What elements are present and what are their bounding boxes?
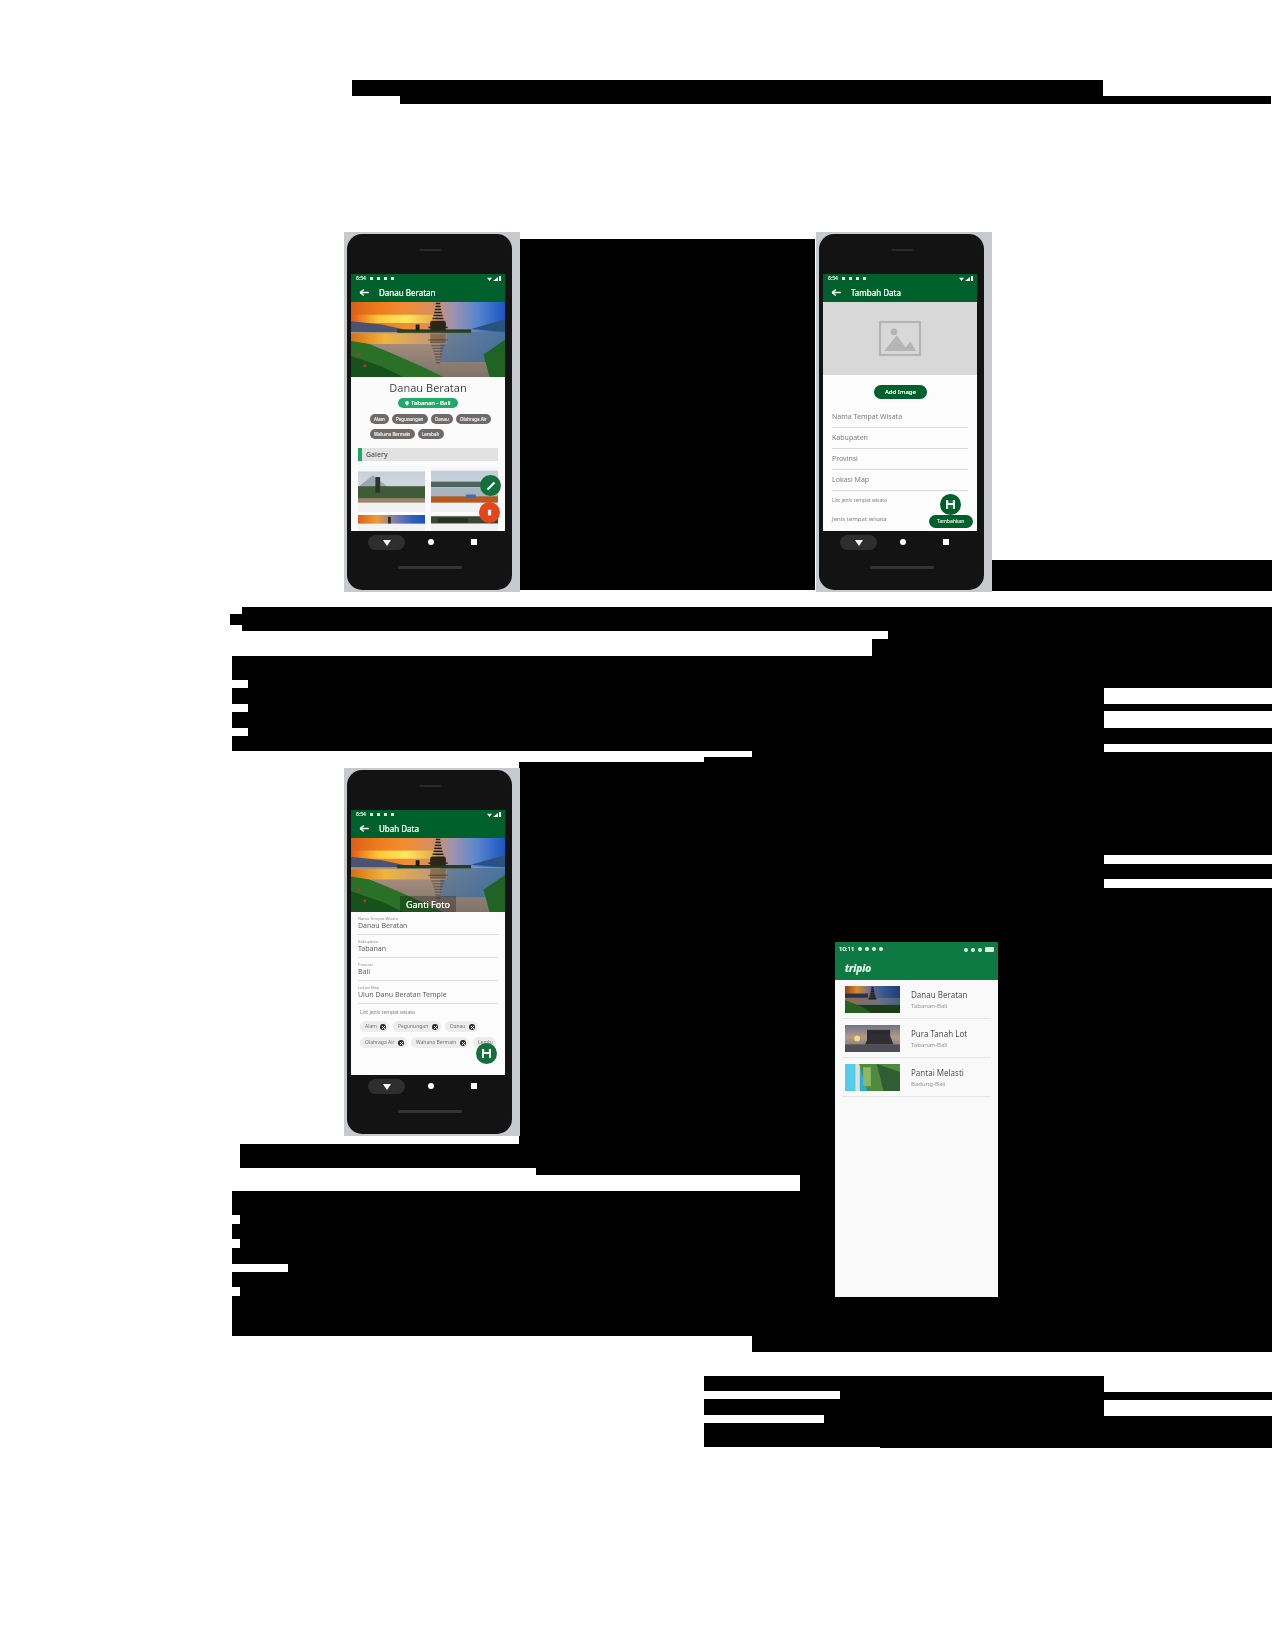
staticText: Alam: [374, 416, 385, 422]
staticText: Ganti Foto: [406, 898, 450, 910]
staticText: Jenis tempat wisata: [832, 515, 887, 523]
staticText: Tabanan: [358, 944, 387, 954]
staticText: Pegunungan: [396, 416, 424, 422]
staticText: Olahraga Air: [365, 1039, 395, 1046]
button[interactable]: Pura Tanah Lot: [835, 1019, 998, 1057]
button[interactable]: Home: [428, 539, 434, 545]
button[interactable]: Wahana Bermain: [416, 1039, 466, 1046]
button[interactable]: Back: [359, 823, 370, 834]
button[interactable]: [358, 466, 425, 512]
button[interactable]: Pegunungan: [398, 1023, 438, 1030]
button[interactable]: Tabanan - Bali: [405, 399, 451, 407]
button[interactable]: Add Image: [885, 388, 916, 396]
staticText: tripio: [845, 961, 872, 975]
button[interactable]: Save: [476, 1043, 497, 1064]
staticText: Danau Beratan: [351, 380, 505, 395]
button[interactable]: Home: [900, 539, 906, 545]
staticText: Lembah: [478, 1039, 493, 1046]
button[interactable]: Save: [940, 494, 961, 515]
button[interactable]: Tambahkan: [937, 518, 965, 525]
button[interactable]: Back: [368, 1079, 405, 1094]
staticText: Pegunungan: [398, 1023, 429, 1030]
staticText: Kabupaten: [358, 939, 379, 944]
staticText: Danau: [435, 416, 449, 422]
staticText: Pura Tanah Lot: [911, 1028, 968, 1039]
staticText: List jenis tempat wisata: [832, 497, 887, 504]
button[interactable]: Back: [831, 287, 842, 298]
button[interactable]: Danau Beratan: [835, 980, 998, 1018]
staticText: 10:11: [839, 945, 855, 953]
button[interactable]: Alam: [365, 1023, 386, 1030]
staticText: Alam: [365, 1023, 377, 1030]
staticText: Danau: [450, 1023, 466, 1030]
button[interactable]: Olahraga Air: [365, 1039, 404, 1046]
staticText: Lokasi Map: [832, 475, 870, 485]
button[interactable]: Alam: [374, 416, 385, 422]
staticText: Olahraga Air: [460, 416, 487, 422]
staticText: Danau Beratan: [911, 989, 968, 1000]
staticText: Wahana Bermain: [416, 1039, 457, 1046]
staticText: Nama Tempat Wisata: [358, 916, 399, 921]
button[interactable]: Back: [840, 535, 877, 550]
staticText: Danau Beratan: [379, 287, 436, 298]
staticText: Tabanan - Bali: [411, 399, 451, 407]
staticText: Lembah: [422, 431, 440, 437]
staticText: Bali: [358, 967, 371, 977]
staticText: Lokasi Map: [358, 985, 380, 990]
button[interactable]: Back: [823, 282, 977, 302]
button[interactable]: [358, 515, 425, 531]
button[interactable]: [431, 515, 498, 531]
button[interactable]: Back: [359, 287, 370, 298]
staticText: Ubah Data: [379, 823, 419, 834]
staticText: Galery: [366, 450, 388, 460]
button[interactable]: Danau: [435, 416, 449, 422]
staticText: 6:54: [828, 275, 838, 282]
button[interactable]: Lembah: [478, 1039, 493, 1046]
button[interactable]: Delete: [479, 502, 500, 523]
staticText: Tambah Data: [851, 287, 901, 298]
button[interactable]: [431, 466, 498, 512]
staticText: Danau Beratan: [358, 921, 408, 931]
button[interactable]: Pantai Melasti: [835, 1058, 998, 1096]
button[interactable]: Danau: [450, 1023, 475, 1030]
staticText: Ulun Danu Beratan Temple: [358, 990, 447, 1000]
staticText: Badung-Bali: [911, 1080, 946, 1088]
staticText: Tambahkan: [937, 518, 965, 525]
button[interactable]: Back: [351, 282, 505, 302]
staticText: Kabupaten: [832, 433, 868, 443]
staticText: 6:54: [356, 275, 366, 282]
button[interactable]: Home: [428, 1083, 434, 1089]
staticText: Nama Tempat Wisata: [832, 412, 903, 422]
button[interactable]: Back: [368, 535, 405, 550]
button[interactable]: Olahraga Air: [460, 416, 487, 422]
button[interactable]: Wahana Bermain: [374, 431, 411, 437]
staticText: Provinsi: [832, 454, 858, 464]
staticText: 6:54: [356, 811, 366, 818]
button[interactable]: Lembah: [422, 431, 440, 437]
staticText: Add Image: [885, 388, 916, 396]
button[interactable]: Edit: [480, 475, 501, 496]
staticText: List jenis tempat wisata: [360, 1009, 415, 1016]
staticText: Wahana Bermain: [374, 431, 411, 437]
staticText: Tabanan-Bali: [911, 1041, 948, 1049]
button[interactable]: Back: [351, 818, 505, 838]
staticText: Pantai Melasti: [911, 1067, 964, 1078]
staticText: Tabanan-Bali: [911, 1002, 948, 1010]
staticText: Provinsi: [358, 962, 373, 967]
button[interactable]: Pegunungan: [396, 416, 424, 422]
button[interactable]: Ganti Foto: [406, 898, 450, 910]
